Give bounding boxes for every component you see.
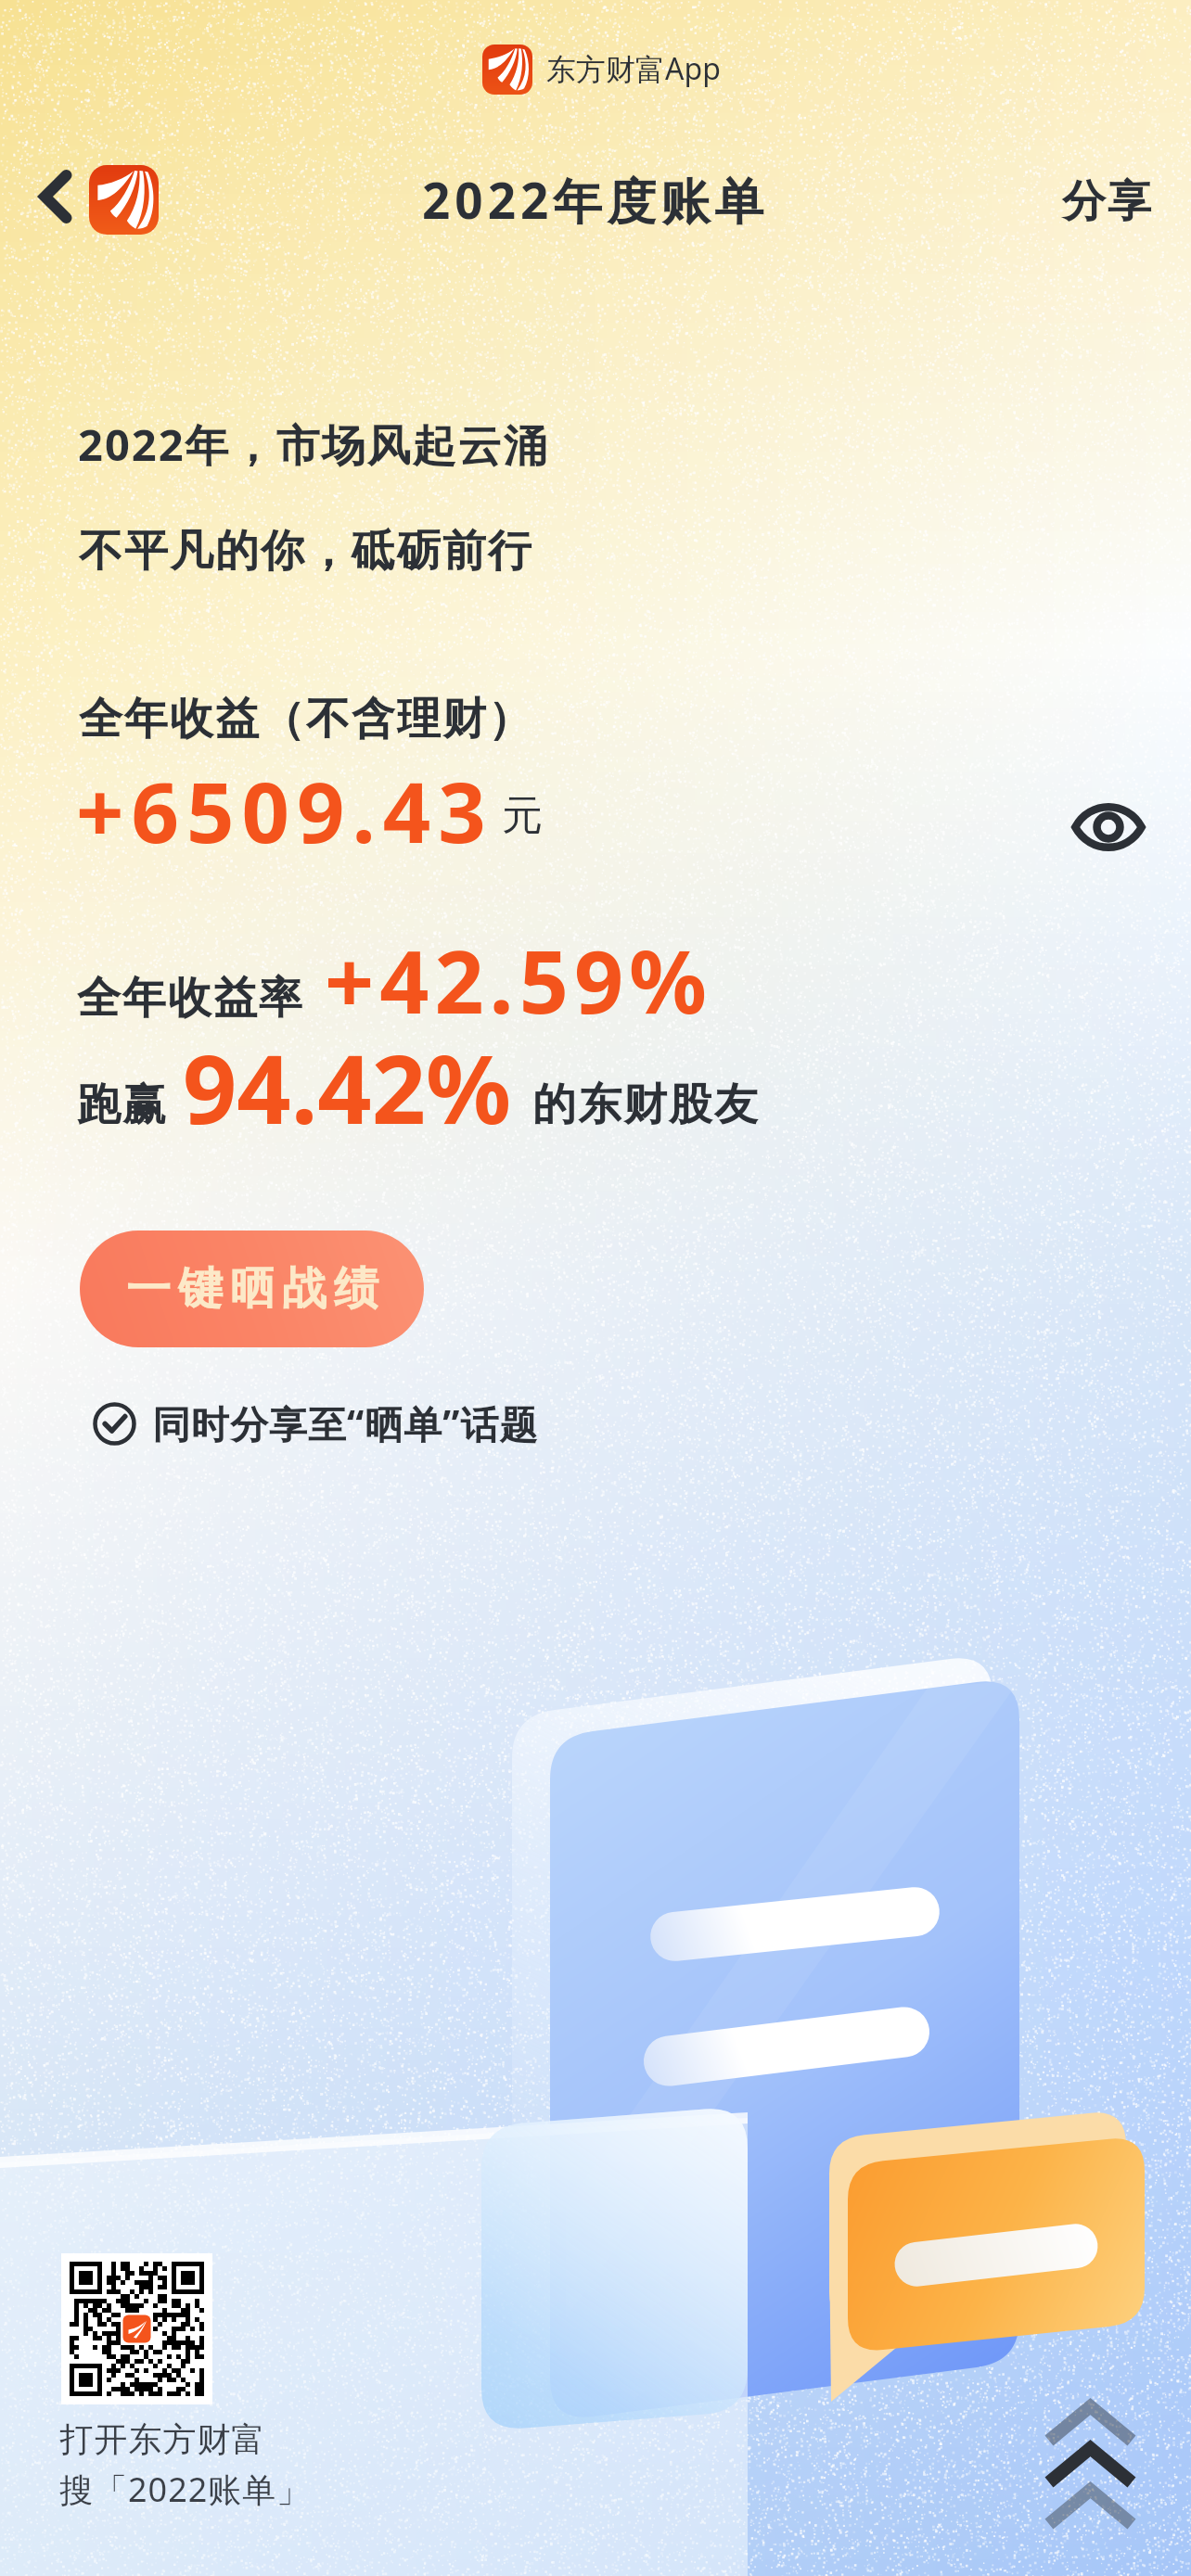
staticText: 2022年度账单 [422, 166, 769, 233]
staticText: 跑赢 [76, 1078, 167, 1132]
button[interactable]: 同时分享至“晒单”话题 [93, 1395, 539, 1452]
staticText: 元 [502, 790, 543, 841]
staticText: +42.59% [325, 922, 712, 1039]
staticText: 2022年，市场风起云涌 [78, 414, 549, 474]
staticText: 搜「2022账单」 [59, 2467, 312, 2512]
button[interactable]: 分享 [1039, 159, 1173, 244]
button[interactable]: Toggle amount visibility [1059, 779, 1158, 875]
staticText: +6509.43 [76, 754, 493, 868]
staticText: 东方财富App [546, 48, 721, 89]
staticText: 全年收益率 [76, 971, 303, 1026]
staticText: 不平凡的你，砥砺前行 [78, 524, 532, 579]
button[interactable]: Back [19, 154, 93, 239]
staticText: 94.42% [183, 1023, 512, 1152]
staticText: 同时分享至“晒单”话题 [152, 1397, 539, 1449]
staticText: 全年收益（不含理财） [78, 692, 532, 746]
staticText: 一键晒战绩 [122, 1261, 382, 1317]
staticText: 分享 [1061, 174, 1152, 229]
button[interactable]: 一键晒战绩 [80, 1231, 424, 1347]
staticText: 打开东方财富 [59, 2418, 265, 2460]
staticText: 的东财股友 [531, 1078, 759, 1132]
